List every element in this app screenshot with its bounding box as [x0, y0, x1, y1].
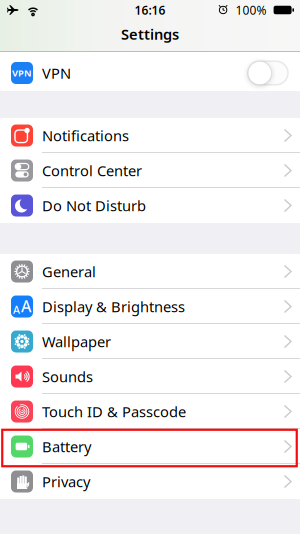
button[interactable]: Battery — [0, 429, 300, 464]
button[interactable]: Control Center — [0, 153, 300, 188]
button[interactable]: Privacy — [0, 464, 300, 499]
button[interactable]: VPN — [0, 52, 300, 91]
staticText: A — [13, 302, 20, 317]
staticText: Wallpaper — [42, 332, 111, 351]
button[interactable]: Notifications — [0, 118, 300, 153]
staticText: 100% — [236, 2, 267, 18]
staticText: Battery — [42, 437, 91, 456]
staticText: Privacy — [42, 472, 90, 491]
staticText: Sounds — [42, 367, 93, 386]
staticText: Touch ID & Passcode — [42, 402, 186, 421]
staticText: VPN — [42, 63, 71, 83]
staticText: Settings — [121, 24, 179, 44]
button[interactable]: Touch ID & Passcode — [0, 394, 300, 429]
button[interactable]: Do Not Disturb — [0, 188, 300, 223]
staticText: General — [42, 262, 96, 281]
staticText: A — [21, 295, 31, 317]
staticText: Display & Brightness — [42, 297, 185, 316]
staticText: VPN — [12, 67, 32, 79]
button[interactable]: Sounds — [0, 359, 300, 394]
button[interactable]: General — [0, 254, 300, 289]
button[interactable]: VPN — [248, 61, 288, 85]
staticText: Notifications — [42, 126, 129, 145]
staticText: 16:16 — [134, 2, 165, 18]
staticText: Control Center — [42, 161, 142, 180]
button[interactable]: Wallpaper — [0, 324, 300, 359]
button[interactable]: A — [0, 289, 300, 324]
staticText: Do Not Disturb — [42, 196, 146, 215]
